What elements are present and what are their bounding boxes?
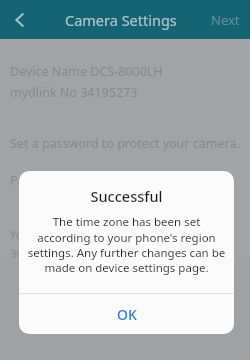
- staticText: Your password must be between 6 and: [10, 227, 211, 242]
- staticText: 30 characters long.: [10, 246, 109, 261]
- staticText: Next: [211, 11, 240, 29]
- staticText: Device Name DCS-8000LH: [10, 63, 163, 80]
- button[interactable]: OK: [19, 294, 234, 334]
- staticText: Camera Settings: [65, 10, 177, 30]
- button[interactable]: Next: [201, 0, 250, 39]
- staticText: mydlink No 34195273: [10, 84, 138, 101]
- staticText: Password: [10, 172, 67, 189]
- staticText: OK: [117, 305, 137, 324]
- button[interactable]: Back: [0, 0, 40, 39]
- staticText: Set a password to protect your camera.: [10, 135, 240, 152]
- staticText: The time zone has been set according to …: [25, 214, 228, 275]
- staticText: Successful: [19, 186, 234, 206]
